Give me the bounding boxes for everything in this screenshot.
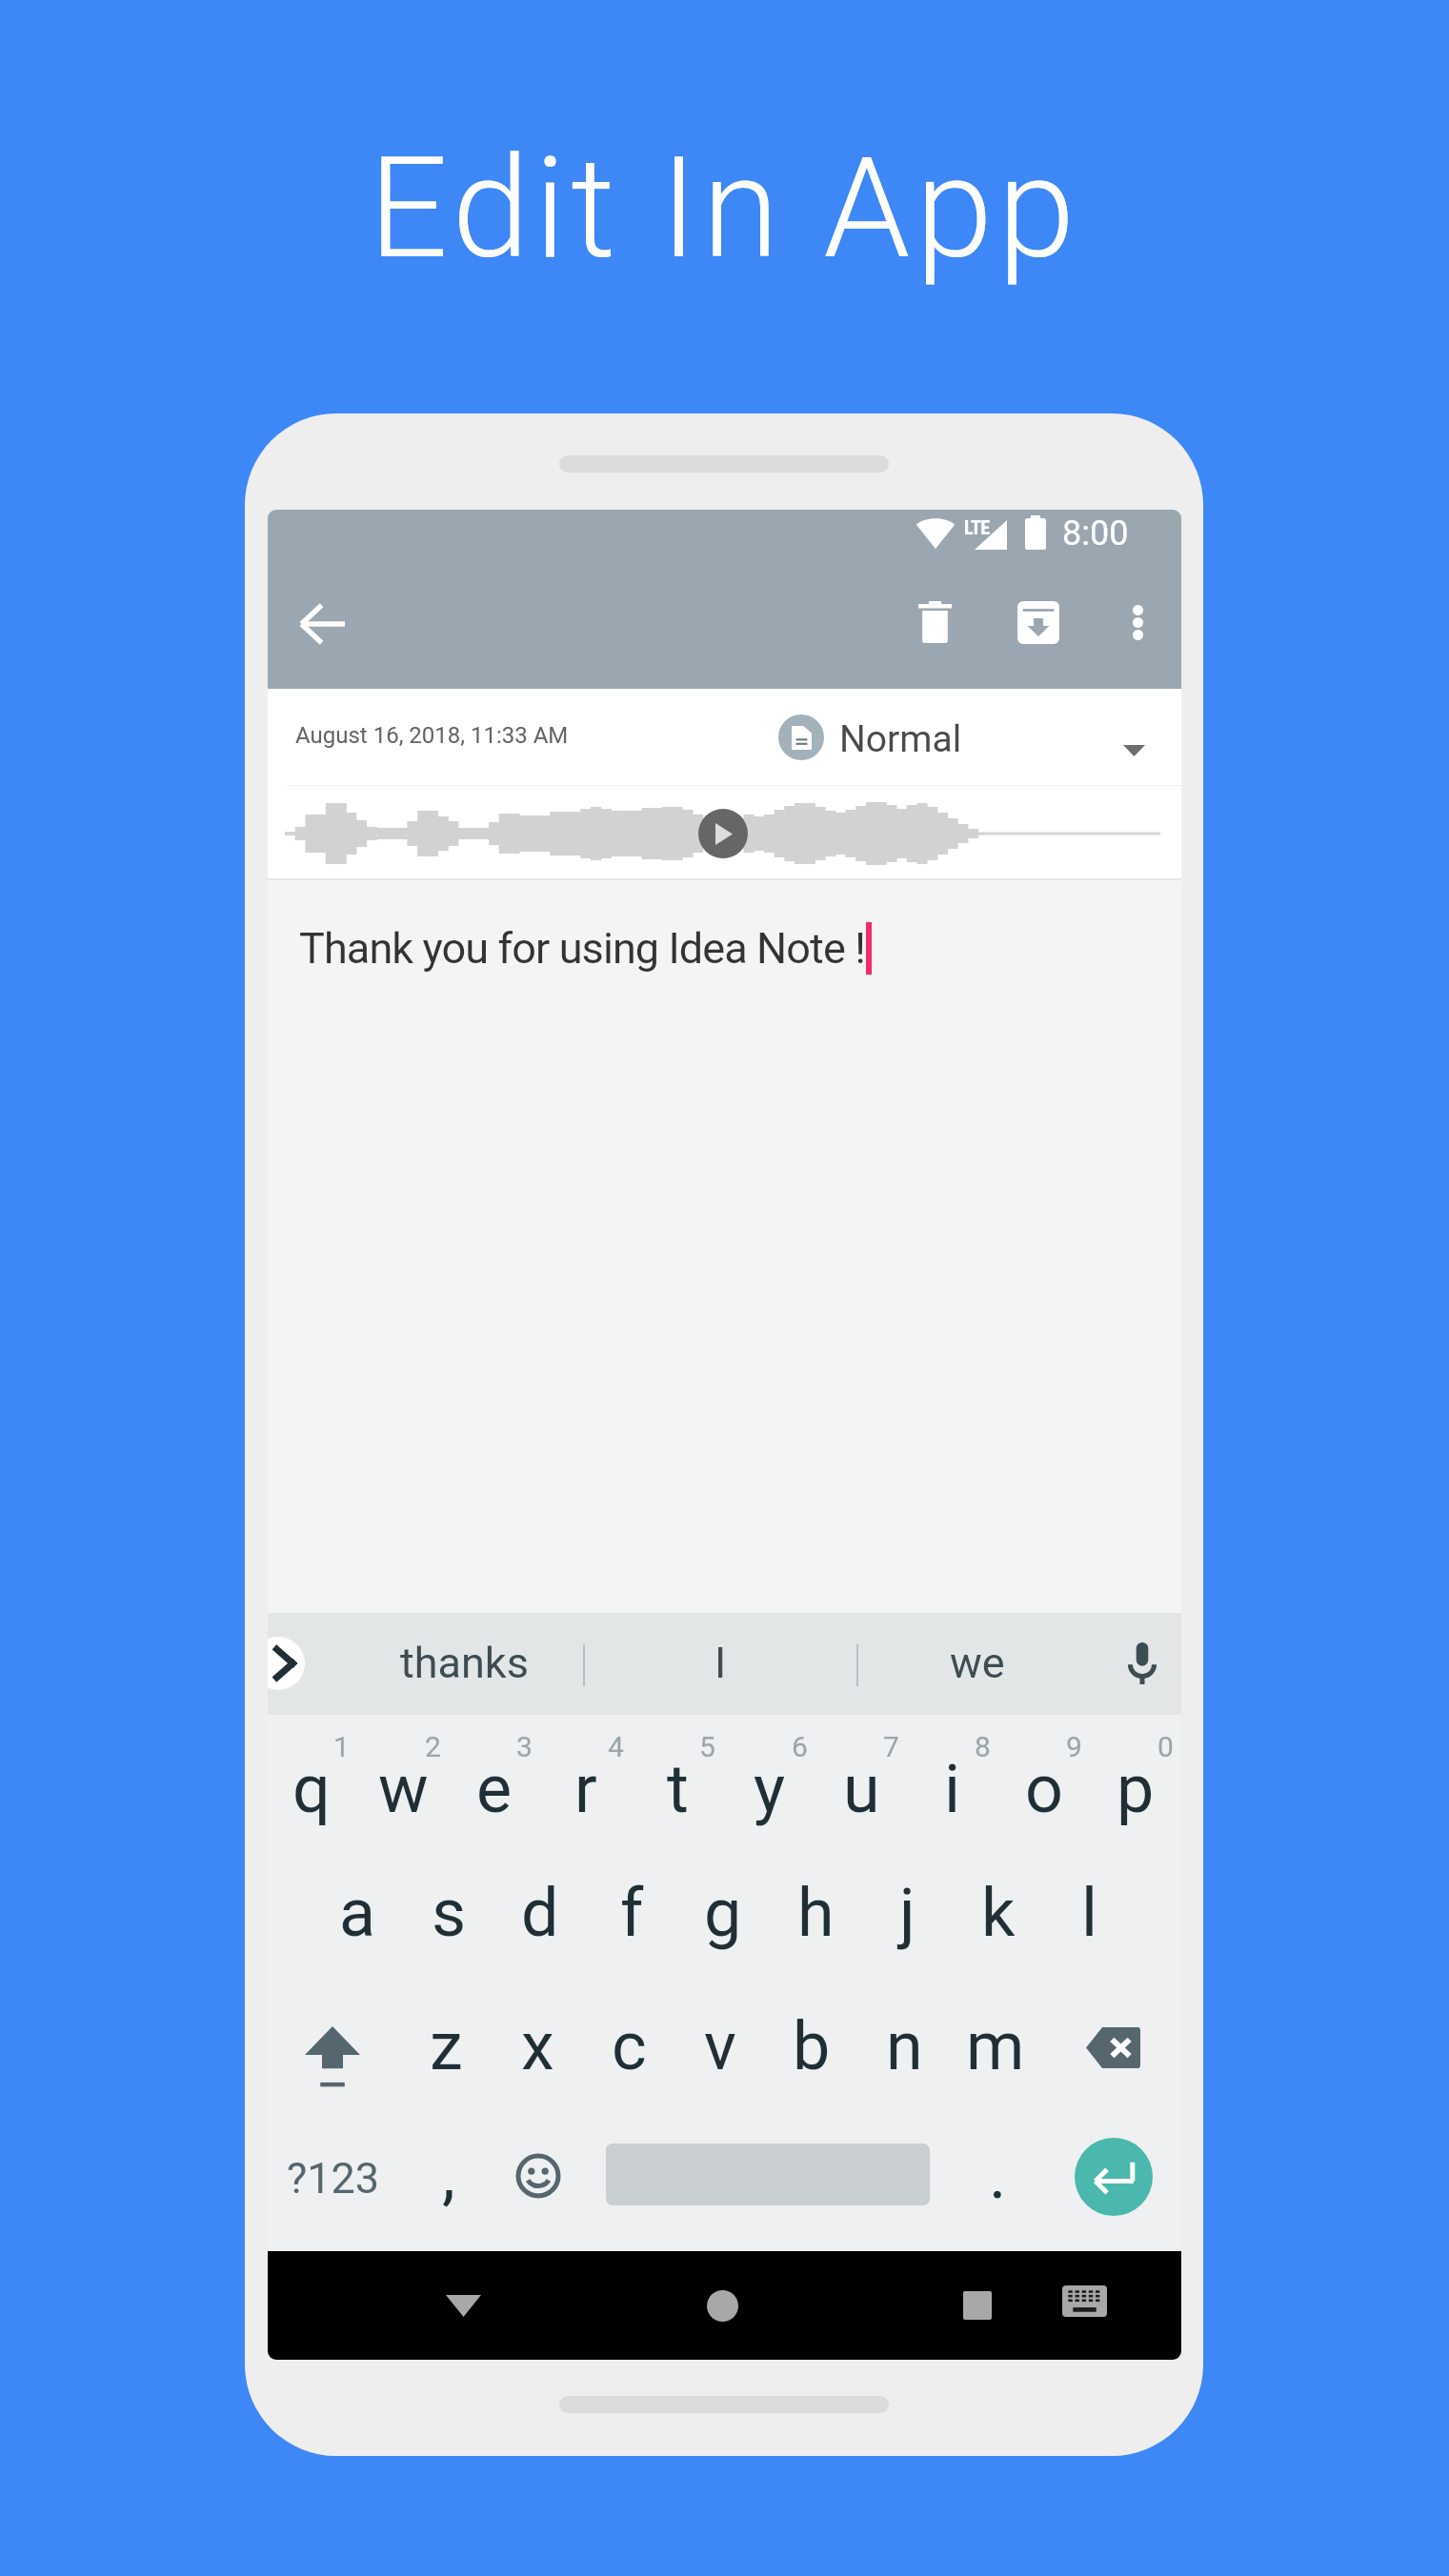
staticText: r [574,1750,597,1828]
staticText: 1 [333,1730,350,1763]
button[interactable]: Delete [880,579,989,665]
button[interactable]: n [858,1983,950,2109]
staticText: I [714,1638,727,1688]
button[interactable]: thanks [350,1613,578,1715]
staticText: 5 [699,1730,715,1763]
staticText: LTE [964,516,990,538]
staticText: f [620,1874,644,1952]
button[interactable]: Backspace [1056,1984,1170,2110]
staticText: n [886,2007,923,2085]
button[interactable]: 0 [1090,1721,1181,1846]
button[interactable]: Back [284,586,360,662]
staticText: , [442,2136,455,2214]
staticText: thanks [400,1638,529,1688]
staticText: 8 [975,1730,991,1763]
button[interactable]: k [953,1850,1044,1976]
staticText: l [1081,1874,1098,1952]
button[interactable]: More suggestions [268,1637,305,1690]
staticText: 6 [792,1730,808,1763]
button[interactable]: z [400,1983,492,2109]
button[interactable]: Back [420,2263,506,2348]
staticText: . [989,2136,1007,2214]
staticText: a [339,1874,376,1952]
staticText: 3 [516,1730,533,1763]
button[interactable]: Keyboard [1046,2263,1122,2339]
button[interactable]: 9 [998,1721,1090,1846]
button[interactable]: 3 [449,1721,540,1846]
staticText: q [292,1750,331,1828]
button[interactable]: Recents [935,2263,1020,2348]
staticText: x [521,2007,554,2085]
staticText: c [612,2007,647,2085]
button[interactable]: 1 [268,1721,357,1846]
staticText: t [667,1750,689,1828]
button[interactable]: h [770,1850,861,1976]
staticText: d [521,1874,559,1952]
staticText: g [704,1874,742,1952]
staticText: 7 [883,1730,899,1763]
button[interactable]: d [494,1850,586,1976]
staticText: o [1025,1750,1063,1828]
button[interactable]: Enter [1075,2138,1153,2216]
button[interactable]: 5 [632,1721,723,1846]
button[interactable]: l [1044,1850,1136,1976]
button[interactable]: More options [1095,579,1180,665]
staticText: e [476,1750,513,1828]
button[interactable]: Voice input [1104,1625,1180,1701]
staticText: August 16, 2018, 11:33 AM [295,722,569,749]
staticText: i [944,1750,961,1828]
button[interactable]: Shift [275,1972,390,2121]
button[interactable]: g [677,1850,769,1976]
button[interactable]: Normal [839,717,962,761]
button[interactable]: Change note type [1100,717,1167,784]
button[interactable]: ?123 [268,2114,400,2240]
button[interactable]: Home [679,2263,765,2348]
button[interactable]: 2 [357,1721,449,1846]
button[interactable]: 8 [907,1721,998,1846]
staticText: k [981,1874,1016,1952]
button[interactable]: 7 [815,1721,907,1846]
button[interactable]: Emoji [493,2113,584,2239]
staticText: j [899,1874,916,1952]
button[interactable]: , [403,2114,494,2240]
button[interactable]: 6 [724,1721,815,1846]
button[interactable]: Space [606,2143,930,2205]
button[interactable]: x [492,1983,583,2109]
staticText: y [754,1750,786,1828]
button[interactable]: c [583,1983,674,2109]
button[interactable]: s [403,1850,494,1976]
button[interactable]: . [952,2114,1043,2240]
staticText: Edit In App [369,128,1080,291]
staticText: p [1117,1750,1155,1828]
button[interactable]: a [312,1850,403,1976]
button[interactable]: Archive [984,579,1093,665]
button[interactable]: m [950,1983,1041,2109]
staticText: v [704,2007,736,2085]
staticText: u [843,1750,880,1828]
staticText: w [378,1750,429,1828]
staticText: 4 [608,1730,624,1763]
button[interactable] [778,714,824,760]
staticText: b [793,2007,831,2085]
staticText: m [966,2007,1025,2085]
staticText: 9 [1066,1730,1082,1763]
button[interactable]: Play [698,809,748,858]
button[interactable]: we [863,1613,1092,1715]
staticText: Thank you for using Idea Note ! [299,923,865,974]
staticText: 8:00 [1062,513,1129,553]
button[interactable]: j [861,1850,953,1976]
button[interactable]: 4 [540,1721,632,1846]
staticText: 2 [425,1730,441,1763]
staticText: 0 [1157,1730,1174,1763]
staticText: s [432,1874,467,1952]
button[interactable]: v [674,1983,766,2109]
staticText: h [797,1874,835,1952]
staticText: z [430,2007,463,2085]
button[interactable]: I [606,1613,835,1715]
staticText: we [950,1638,1005,1688]
button[interactable]: b [766,1983,857,2109]
staticText: ?123 [287,2153,380,2204]
button[interactable]: f [586,1850,677,1976]
